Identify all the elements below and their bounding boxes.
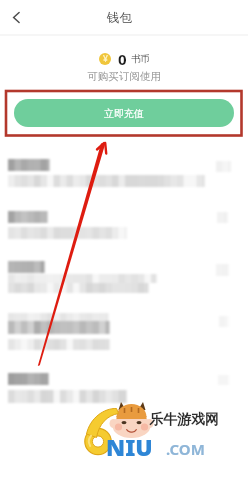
staticText: 乐牛游戏网 (149, 411, 219, 429)
staticText: .COM (166, 439, 205, 459)
staticText: 立即充值 (104, 107, 144, 120)
staticText: NIU (106, 431, 153, 462)
staticText: 0 (118, 49, 127, 69)
button[interactable]: 立即充值 (14, 99, 234, 127)
staticText: 可购买订阅使用 (0, 70, 248, 83)
button[interactable]: Back (0, 1, 32, 33)
staticText: 钱包 (107, 10, 132, 26)
staticText: ¥ (103, 53, 108, 65)
staticText: 书币 (131, 53, 150, 65)
